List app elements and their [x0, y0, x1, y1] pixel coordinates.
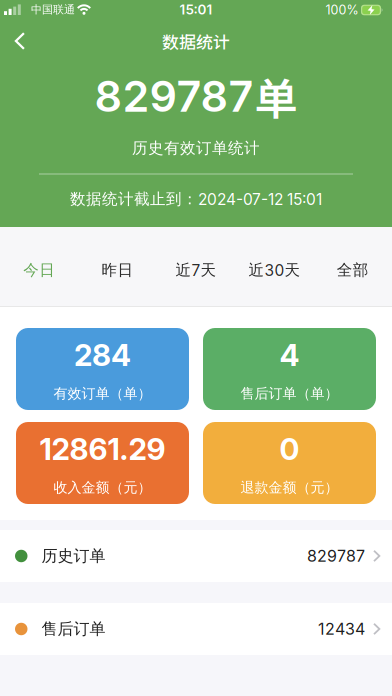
staticText: 单 — [254, 65, 297, 127]
staticText: 售后订单（单） — [240, 385, 338, 402]
staticText: 100% — [325, 2, 358, 17]
staticText: 数据统计 — [162, 29, 230, 53]
staticText: 历史有效订单统计 — [132, 138, 260, 158]
staticText: 12861.29 — [39, 431, 165, 467]
staticText: 全部 — [337, 260, 369, 280]
staticText: 昨日 — [102, 260, 134, 280]
staticText: 数据统计截止到：2024-07-12 15:01 — [70, 189, 322, 209]
staticText: 今日 — [23, 260, 55, 280]
staticText: 退款金额（元） — [240, 479, 338, 496]
staticText: 中国联通 — [31, 3, 75, 16]
staticText: 近7天 — [175, 260, 216, 280]
staticText: 15:01 — [179, 1, 212, 18]
staticText: 近30天 — [248, 260, 300, 280]
staticText: 829787 — [94, 70, 253, 122]
staticText: 284 — [74, 337, 131, 373]
staticText: 有效订单（单） — [53, 385, 151, 402]
staticText: 0 — [279, 431, 299, 467]
staticText: 历史订单 — [41, 546, 105, 566]
staticText: 售后订单 — [41, 619, 105, 639]
staticText: 4 — [279, 337, 299, 373]
staticText: 收入金额（元） — [53, 479, 151, 496]
staticText: 12434 — [318, 619, 365, 639]
staticText: 829787 — [307, 546, 365, 566]
